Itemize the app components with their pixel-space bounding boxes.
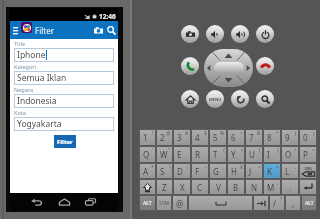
button[interactable]: 1 [140,130,155,145]
button[interactable]: Back [28,195,44,209]
staticText: \ [169,164,171,171]
staticText: U [249,149,255,160]
button[interactable]: Yogyakarta [17,117,112,131]
button[interactable]: End call [256,57,274,75]
button[interactable]: L [282,164,298,178]
button[interactable]: Home [181,90,199,108]
button[interactable]: App logo [21,22,32,33]
button[interactable]: J [246,164,262,178]
button[interactable]: R [192,147,208,162]
staticText: ] [277,147,279,154]
button[interactable]: Menu [206,90,224,108]
button[interactable]: M [264,180,280,194]
button[interactable]: Select [214,62,244,74]
staticText: $ [204,130,207,137]
staticText: 12:46 [99,12,116,21]
staticText: Indonesia [17,95,57,107]
button[interactable]: @ [173,196,187,210]
button[interactable]: Volume down [206,25,224,43]
button[interactable]: P [300,147,316,162]
staticText: . [289,182,292,193]
staticText: S [160,166,165,177]
button[interactable]: N [246,180,262,194]
button[interactable]: U [246,147,262,162]
button[interactable]: Z [157,180,172,194]
button[interactable]: Volume up [231,25,249,43]
staticText: ´ [187,147,189,154]
button[interactable]: H [228,164,244,178]
button[interactable]: Search [256,90,274,108]
button[interactable]: 2 [157,130,172,145]
button[interactable]: Home [56,195,72,209]
button[interactable]: 9 [282,130,298,145]
staticText: 2 [160,132,165,143]
button[interactable] [254,196,268,210]
button[interactable]: Navigation menu [10,23,20,37]
button[interactable]: Q [140,147,155,162]
button[interactable]: C [192,180,208,194]
button[interactable]: D [174,164,190,178]
button[interactable]: Search [104,23,118,37]
staticText: 5 [213,132,218,143]
staticText: G [213,166,219,177]
button[interactable]: 3 [174,130,190,145]
button[interactable]: ALT [302,196,316,210]
button[interactable] [140,180,155,194]
button[interactable]: Camera [181,25,199,43]
button[interactable]: Iphone [17,48,112,62]
button[interactable]: Recent apps [82,195,98,209]
button[interactable]: T [210,147,226,162]
staticText: ALT [305,200,314,207]
button[interactable]: 4 [192,130,208,145]
staticText: K [267,166,272,177]
button[interactable]: D-pad [204,49,253,87]
staticText: < [258,164,261,171]
staticText: F [195,166,200,177]
button[interactable]: . [282,180,298,194]
button[interactable]: I [264,147,280,162]
button[interactable]: Semua Iklan [17,71,112,85]
button[interactable]: B [228,180,244,194]
button[interactable]: 7 [246,130,262,145]
staticText: ! [152,130,154,137]
staticText: 1 [143,132,148,143]
button[interactable]: Back [231,90,249,108]
button[interactable]: 5 [210,130,226,145]
staticText: A [143,166,149,177]
button[interactable]: E [174,147,190,162]
staticText: H [231,166,237,177]
button[interactable]: / [270,196,284,210]
button[interactable]: W [157,147,172,162]
button[interactable]: A [140,164,155,178]
staticText: & [257,130,261,137]
staticText: * [151,164,154,171]
button[interactable]: F [192,164,208,178]
button[interactable]: ALT [140,196,155,210]
staticText: Filter [57,138,73,146]
button[interactable]: Indonesia [17,94,112,108]
button[interactable]: 8 [264,130,280,145]
button[interactable]: 0 [300,130,316,145]
staticText: Q [143,149,150,160]
staticText: Kategori [14,63,36,70]
staticText: Z [162,182,167,193]
button[interactable]: G [210,164,226,178]
button[interactable]: Camera [91,23,105,37]
button[interactable]: SYM [157,196,171,210]
button[interactable] [189,196,252,210]
button[interactable]: DEL [300,164,316,178]
button[interactable]: Y [228,147,244,162]
button[interactable]: K [264,164,280,178]
button[interactable] [300,180,316,194]
staticText: R [195,149,200,160]
button[interactable]: , [286,196,300,210]
button[interactable]: O [282,147,298,162]
button[interactable]: Filter [54,135,76,148]
button[interactable]: Power [256,25,274,43]
button[interactable]: 6 [228,130,244,145]
button[interactable]: S [157,164,172,178]
staticText: : [295,164,297,171]
button[interactable]: X [174,180,190,194]
button[interactable]: V [210,180,226,194]
button[interactable]: Call [181,57,199,75]
